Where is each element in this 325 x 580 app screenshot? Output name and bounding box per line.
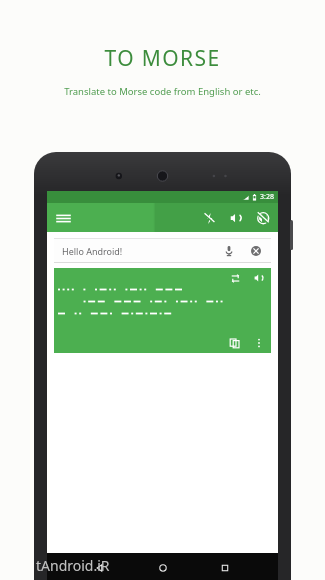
button[interactable]: Vibration off — [254, 209, 272, 227]
button[interactable]: More options — [252, 336, 266, 350]
staticText: Hello Android! — [62, 245, 123, 257]
button[interactable]: Recents — [215, 558, 235, 578]
staticText: 3:28 — [260, 192, 274, 202]
button[interactable]: Menu — [53, 208, 73, 228]
button[interactable]: Home — [153, 558, 173, 578]
button[interactable]: Flash off — [200, 209, 218, 227]
button[interactable]: Hello Android! — [54, 238, 271, 263]
staticText: Translate to Morse code from English or … — [64, 85, 261, 98]
button[interactable]: Repeat — [54, 268, 271, 353]
button[interactable]: Voice input — [221, 243, 237, 259]
button[interactable]: Copy — [228, 336, 242, 350]
staticText: TO MORSE — [104, 44, 221, 73]
button[interactable]: Sound on — [227, 209, 245, 227]
button[interactable]: Clear text — [248, 243, 264, 259]
button[interactable]: Repeat — [228, 271, 242, 285]
staticText: tAndroid.iR — [36, 556, 110, 575]
button[interactable]: Play sound — [252, 271, 266, 285]
button[interactable]: Back — [90, 558, 110, 578]
